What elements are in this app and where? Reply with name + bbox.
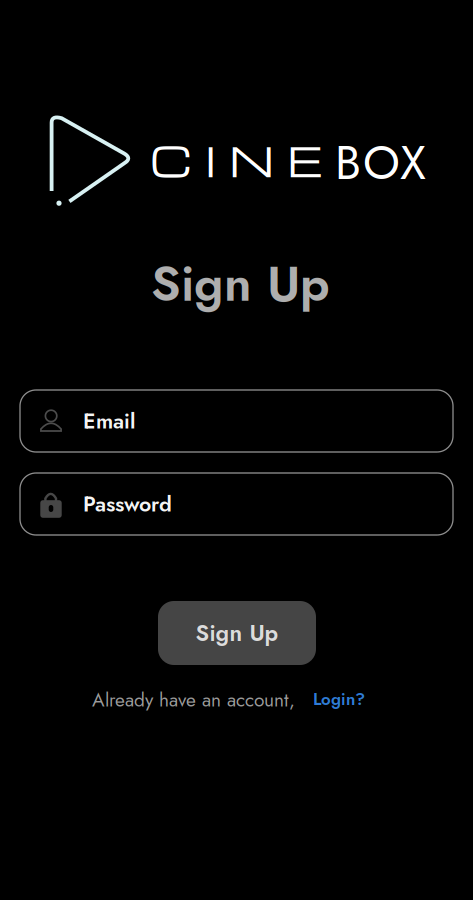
button[interactable]: Email	[20, 390, 453, 452]
button[interactable]: Sign Up	[158, 601, 316, 665]
staticText: Sign Up	[151, 248, 330, 319]
staticText: Sign Up	[195, 617, 278, 649]
staticText: Email	[83, 406, 136, 436]
staticText: BOX	[335, 129, 426, 196]
button[interactable]: Login?	[313, 687, 365, 711]
button[interactable]: Password	[20, 473, 453, 535]
staticText: Already have an account,	[92, 686, 295, 714]
staticText: CINE	[150, 131, 322, 188]
staticText: Login?	[313, 687, 365, 711]
staticText: Password	[83, 489, 172, 519]
